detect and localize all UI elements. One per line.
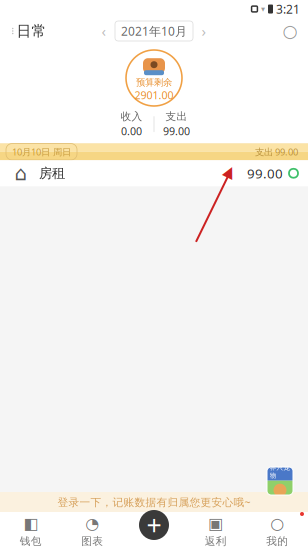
button[interactable]: 宠物 <box>267 467 293 495</box>
staticText: + <box>146 507 161 543</box>
staticText: ◧ <box>23 514 38 533</box>
staticText: 收入 <box>121 110 143 123</box>
button[interactable]: ◔ <box>61 512 123 550</box>
staticText: ○ <box>282 21 297 41</box>
staticText: › <box>201 21 206 41</box>
button[interactable]: 上个月 <box>98 23 110 39</box>
staticText: 日常 <box>16 22 46 40</box>
staticText: ○ <box>270 514 284 533</box>
button[interactable]: ○ <box>246 512 308 550</box>
staticText: 10月10日 周日 <box>12 146 71 158</box>
staticText: 钱包 <box>20 534 42 548</box>
staticText: 图表 <box>81 534 103 548</box>
staticText: 返利 <box>205 534 227 548</box>
staticText: 99.00 <box>247 164 283 182</box>
staticText: 3:21 <box>276 1 300 17</box>
staticText: ‹ <box>101 21 106 41</box>
staticText: ▲ <box>224 163 235 179</box>
button[interactable]: 日常 <box>4 16 54 46</box>
button[interactable]: 2021年10月 <box>115 21 193 41</box>
staticText: ⌂ <box>14 162 27 185</box>
staticText: 预算剩余 <box>136 77 172 88</box>
button[interactable]: 记一笔 <box>134 505 174 545</box>
staticText: 养只宠物 <box>269 463 290 480</box>
button[interactable]: 下个月 <box>198 23 210 39</box>
staticText: 支出 99.00 <box>255 146 298 158</box>
button[interactable]: ▣ <box>185 512 246 550</box>
staticText: 99.00 <box>163 124 190 138</box>
button[interactable]: 预算剩余 <box>124 48 184 108</box>
staticText: 2021年10月 <box>121 23 187 39</box>
staticText: 0.00 <box>121 124 142 138</box>
staticText: 房租 <box>39 165 65 181</box>
staticText: ▾ <box>261 4 265 14</box>
button[interactable]: ⌂ <box>0 160 308 186</box>
staticText: ▣ <box>208 514 223 533</box>
button[interactable]: 登录一下，记账数据有归属您更安心哦~ <box>0 492 308 512</box>
staticText: ◔ <box>85 514 99 533</box>
staticText: 2901.00 <box>134 88 173 102</box>
staticText: 支出 <box>165 110 187 123</box>
staticText: 我的 <box>266 534 288 548</box>
button[interactable]: ◧ <box>0 512 61 550</box>
staticText: 登录一下，记账数据有归属您更安心哦~ <box>57 495 250 509</box>
button[interactable]: 搜索 <box>276 19 304 43</box>
